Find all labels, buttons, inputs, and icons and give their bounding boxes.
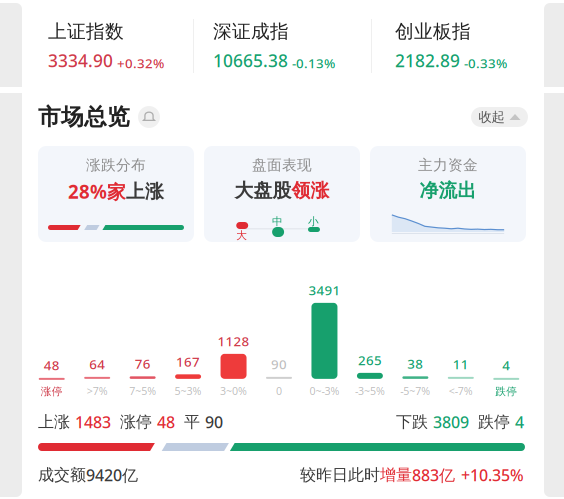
staticText: 主力资金 — [418, 156, 478, 174]
staticText: >7% — [87, 384, 108, 398]
staticText: 1128 — [217, 332, 249, 350]
staticText: 涨跌分布 — [86, 156, 146, 174]
staticText: 10665.38 — [213, 49, 288, 72]
button[interactable]: 收起 — [471, 107, 528, 127]
staticText: 领涨 — [291, 179, 329, 202]
staticText: +0.32% — [117, 54, 164, 72]
staticText: 9420亿 — [86, 464, 138, 486]
staticText: 涨停 — [41, 385, 63, 398]
button[interactable]: 创业板指 — [371, 0, 564, 87]
staticText: 7~5% — [129, 384, 156, 398]
staticText: 5~3% — [175, 384, 202, 398]
staticText: 48 — [44, 356, 60, 374]
staticText: 0 — [276, 384, 282, 398]
staticText: -0.33% — [464, 54, 507, 72]
staticText: 上证指数 — [48, 20, 124, 43]
staticText: 跌停 — [495, 385, 517, 398]
staticText: +10.35% — [461, 464, 524, 486]
staticText: 90 — [205, 411, 223, 433]
staticText: 跌停 — [478, 412, 510, 432]
staticText: 深证成指 — [213, 20, 289, 43]
staticText: 盘面表现 — [252, 156, 312, 174]
staticText: 76 — [135, 355, 151, 372]
staticText: 小 — [308, 215, 319, 228]
staticText: 涨停 — [120, 412, 152, 432]
staticText: 3~0% — [220, 384, 247, 398]
staticText: 增量 — [380, 465, 412, 485]
button[interactable]: 提醒 — [138, 106, 160, 128]
button[interactable]: 深证成指 — [193, 0, 371, 87]
staticText: 4 — [515, 411, 524, 433]
staticText: 中 — [272, 215, 283, 228]
staticText: 64 — [89, 355, 105, 373]
button[interactable]: 涨跌分布 — [38, 146, 194, 242]
staticText: 成交额 — [38, 465, 86, 485]
staticText: 净流出 — [419, 179, 476, 202]
staticText: -3~5% — [355, 384, 385, 398]
staticText: 大 — [236, 229, 247, 242]
staticText: 平 — [184, 412, 200, 432]
staticText: 48 — [157, 411, 175, 433]
staticText: 市场总览 — [38, 103, 130, 131]
staticText: 28%家 — [68, 179, 126, 204]
staticText: 0~-3% — [309, 384, 339, 398]
staticText: 1483 — [75, 411, 111, 433]
button[interactable]: 主力资金 — [370, 146, 526, 242]
staticText: 38 — [407, 355, 423, 372]
staticText: 3809 — [433, 411, 469, 433]
staticText: 大盘股 — [234, 179, 291, 202]
button[interactable]: 上证指数 — [0, 0, 193, 87]
staticText: -0.13% — [292, 54, 335, 72]
staticText: 265 — [358, 351, 382, 369]
staticText: 2182.89 — [395, 49, 460, 72]
staticText: 11 — [453, 355, 469, 373]
staticText: 4 — [502, 356, 510, 374]
staticText: 90 — [271, 355, 287, 373]
staticText: 167 — [176, 353, 200, 370]
staticText: -5~7% — [400, 384, 430, 398]
button[interactable]: 盘面表现 — [204, 146, 360, 242]
staticText: 3334.90 — [48, 49, 113, 72]
staticText: 上涨 — [38, 412, 70, 432]
staticText: <-7% — [449, 384, 473, 398]
staticText: 3491 — [308, 281, 340, 299]
staticText: 较昨日此时 — [300, 465, 380, 485]
staticText: 下跌 — [396, 412, 428, 432]
staticText: 上涨 — [126, 180, 164, 203]
staticText: 创业板指 — [395, 20, 471, 43]
staticText: 收起 — [478, 109, 504, 125]
staticText: 883亿 — [412, 464, 455, 486]
